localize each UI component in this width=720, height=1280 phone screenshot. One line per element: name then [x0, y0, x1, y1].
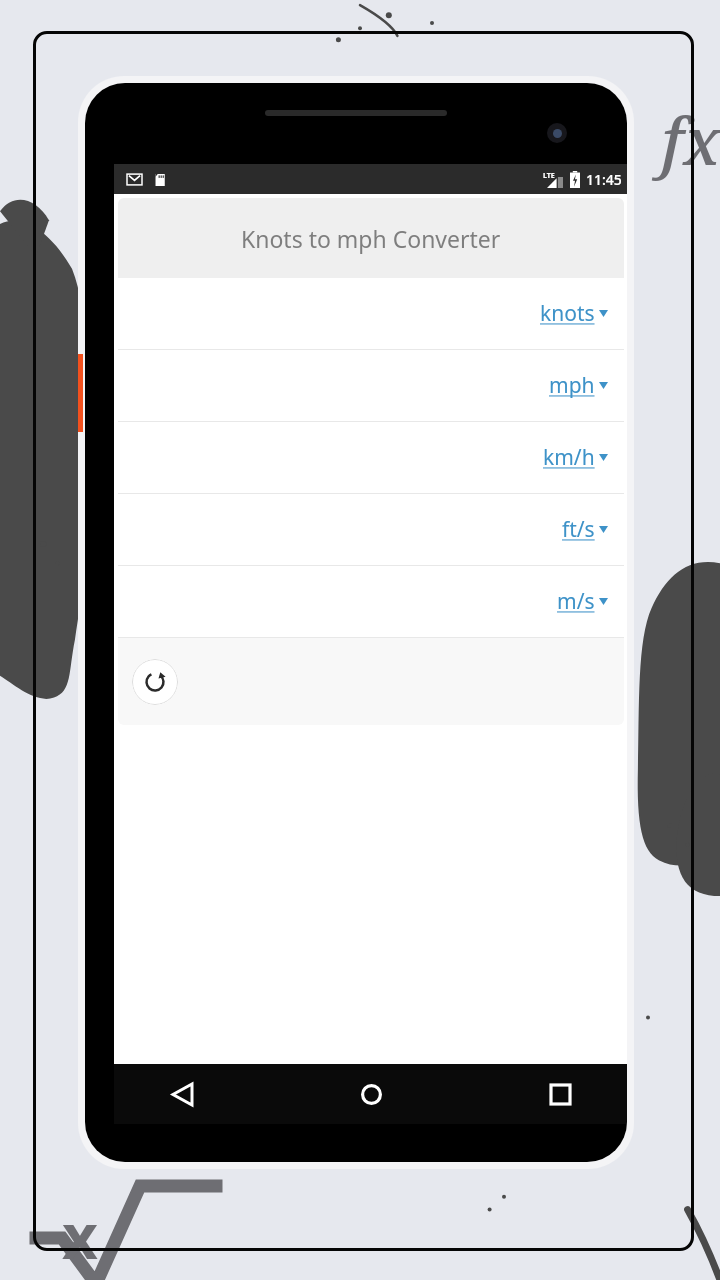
- staticText: m/s: [557, 587, 595, 616]
- staticText: ft/s: [562, 515, 595, 544]
- button[interactable]: Back: [160, 1072, 204, 1116]
- button[interactable]: Home: [349, 1072, 393, 1116]
- staticText: 11:45: [586, 170, 622, 189]
- button[interactable]: m/s: [118, 566, 624, 637]
- staticText: fx: [661, 94, 720, 184]
- button[interactable]: Recent apps: [538, 1072, 582, 1116]
- button[interactable]: mph: [118, 350, 624, 421]
- button[interactable]: Reset: [132, 659, 178, 705]
- staticText: mph: [549, 371, 595, 400]
- staticText: LTE: [543, 171, 555, 181]
- staticText: x: [62, 1193, 98, 1277]
- staticText: Knots to mph Converter: [241, 223, 501, 254]
- staticText: km/h: [543, 443, 595, 472]
- button[interactable]: km/h: [118, 422, 624, 493]
- button[interactable]: knots: [118, 278, 624, 349]
- button[interactable]: ft/s: [118, 494, 624, 565]
- staticText: knots: [540, 299, 595, 328]
